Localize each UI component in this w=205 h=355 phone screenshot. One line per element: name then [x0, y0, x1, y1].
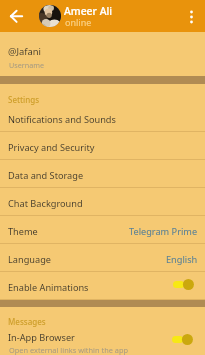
staticText: Theme [8, 225, 38, 238]
staticText: Data and Storage [8, 169, 84, 182]
staticText: Language [8, 253, 51, 266]
staticText: Telegram Prime [129, 225, 198, 238]
staticText: Username [9, 60, 44, 70]
staticText: Settings [8, 94, 40, 105]
button[interactable]: In-App Browser [0, 329, 205, 355]
staticText: Open external links within the app [9, 345, 129, 355]
staticText: Enable Animations [8, 281, 89, 294]
button[interactable]: @Jafani [0, 32, 205, 76]
button[interactable]: Theme [0, 216, 205, 244]
staticText: In-App Browser [8, 331, 75, 344]
staticText: Notifications and Sounds [8, 113, 116, 126]
button[interactable]: Enable Animations [0, 272, 205, 300]
staticText: online [65, 16, 92, 28]
button[interactable]: Notifications and Sounds [0, 104, 205, 132]
button[interactable]: Privacy and Security [0, 132, 205, 160]
staticText: Chat Background [8, 197, 83, 210]
button[interactable]: Language [0, 244, 205, 272]
staticText: Ameer Ali [64, 4, 113, 18]
button[interactable]: Back [0, 0, 32, 32]
button[interactable]: Chat Background [0, 188, 205, 216]
staticText: @Jafani [8, 45, 41, 58]
staticText: Messages [8, 316, 46, 327]
staticText: Privacy and Security [8, 141, 95, 154]
button[interactable]: More options [173, 0, 205, 32]
staticText: English [166, 253, 198, 266]
button[interactable]: Data and Storage [0, 160, 205, 188]
